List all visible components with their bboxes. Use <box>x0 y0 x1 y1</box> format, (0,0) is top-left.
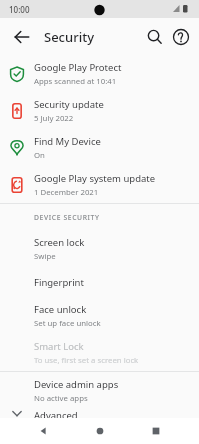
button[interactable]: Smart Lock <box>0 334 199 371</box>
staticText: Face unlock <box>34 303 87 316</box>
button[interactable]: Search <box>143 25 167 49</box>
staticText: Smart Lock <box>34 340 84 353</box>
button[interactable]: Home <box>87 418 113 444</box>
staticText: To use, first set a screen lock <box>34 355 139 366</box>
button[interactable]: Google Play Protect <box>0 55 199 92</box>
staticText: No active apps <box>34 393 88 404</box>
button[interactable]: Back <box>30 418 56 444</box>
button[interactable]: Security update <box>0 92 199 129</box>
staticText: Fingerprint <box>34 276 84 289</box>
button[interactable]: Help <box>169 25 193 49</box>
staticText: Set up face unlock <box>34 318 101 329</box>
button[interactable]: Find My Device <box>0 129 199 166</box>
staticText: DEVICE SECURITY <box>34 213 100 222</box>
button[interactable]: Screen lock <box>0 230 199 267</box>
staticText: Find My Device <box>34 135 101 148</box>
staticText: Device admin apps <box>34 378 119 391</box>
staticText: Security update <box>34 98 104 111</box>
staticText: Google Play Protect <box>34 61 122 74</box>
button[interactable]: Face unlock <box>0 297 199 334</box>
button[interactable]: Device admin apps <box>0 372 199 409</box>
staticText: Security <box>44 28 94 46</box>
button[interactable]: Advanced <box>0 409 199 418</box>
staticText: Google Play system update <box>34 172 156 185</box>
staticText: On <box>34 150 45 161</box>
button[interactable]: Fingerprint <box>0 267 199 297</box>
staticText: Swipe <box>34 251 56 262</box>
button[interactable]: Google Play system update <box>0 166 199 203</box>
staticText: 5 July 2022 <box>34 113 74 124</box>
staticText: Advanced <box>34 409 78 418</box>
button[interactable]: Recents <box>143 418 169 444</box>
staticText: 1 December 2021 <box>34 187 99 198</box>
staticText: Apps scanned at 10:41 <box>34 76 117 87</box>
button[interactable]: Back <box>10 25 34 49</box>
staticText: Screen lock <box>34 236 85 249</box>
staticText: 10:00 <box>9 4 30 15</box>
